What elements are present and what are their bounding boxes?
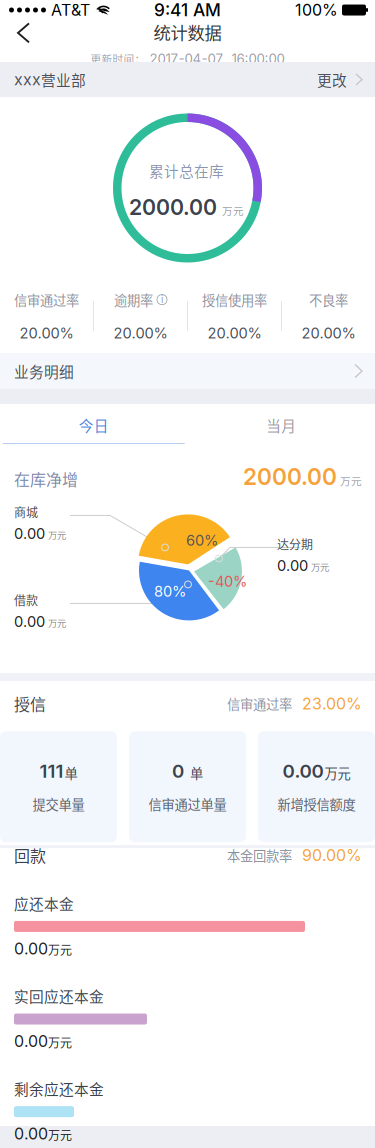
staticText: 80%	[154, 582, 186, 600]
button[interactable]: xxx	[0, 62, 375, 97]
staticText: 90.00%	[302, 845, 362, 865]
staticText: 万元	[48, 528, 66, 541]
staticText: 达分期	[277, 535, 313, 553]
staticText: 万元	[340, 473, 362, 488]
staticText: 不良率	[309, 290, 348, 309]
staticText: 0	[172, 760, 189, 782]
staticText: 应还本金	[14, 893, 74, 914]
staticText: 万元	[48, 941, 72, 958]
staticText: 授信使用率	[202, 290, 267, 309]
button[interactable]: Back	[0, 15, 43, 51]
staticText: 万元	[324, 763, 350, 782]
staticText: 0.00	[277, 557, 308, 574]
staticText: -40%	[208, 572, 247, 590]
staticText: 新增授信额度	[277, 794, 355, 814]
staticText: 信审通过率	[14, 290, 79, 309]
staticText: 更新时间：	[90, 51, 145, 66]
staticText: 商城	[14, 503, 38, 521]
staticText: 营业部	[41, 69, 86, 90]
staticText: 信审通过率	[227, 694, 292, 713]
staticText: 业务明细	[14, 360, 74, 382]
staticText: 111	[39, 760, 63, 782]
staticText: 剩余应还本金	[14, 1078, 104, 1099]
staticText: i	[161, 294, 163, 305]
staticText: 信审通过单量	[148, 794, 226, 814]
staticText: 9:41 AM	[154, 0, 221, 20]
staticText: 授信	[14, 692, 46, 715]
button[interactable]: 今日	[0, 404, 187, 444]
button[interactable]: 当月	[187, 404, 375, 444]
button[interactable]: 业务明细	[0, 353, 375, 389]
staticText: 当月	[266, 414, 296, 436]
staticText: 2017-04-07 16:00:00	[145, 50, 284, 67]
staticText: 本金回款率	[227, 845, 292, 865]
staticText: 0.00	[14, 525, 45, 542]
staticText: xxx	[14, 70, 41, 89]
staticText: 万元	[311, 560, 329, 573]
staticText: 0.00	[14, 1124, 48, 1143]
staticText: 实回应还本金	[14, 985, 104, 1006]
staticText: 23.00%	[302, 694, 362, 713]
staticText: 逾期率	[114, 290, 153, 309]
staticText: 统计数据	[153, 19, 221, 44]
staticText: 单	[190, 763, 203, 782]
staticText: 100%	[295, 0, 338, 20]
staticText: 20.00%	[113, 324, 167, 342]
staticText: 0.00	[14, 613, 45, 630]
staticText: 在库净增	[14, 467, 78, 490]
staticText: 万元	[222, 203, 244, 218]
staticText: 借款	[14, 591, 38, 609]
staticText: 0.00	[282, 760, 323, 782]
staticText: 单	[64, 763, 77, 782]
staticText: 万元	[48, 1033, 72, 1051]
staticText: 回款	[14, 843, 46, 867]
staticText: 20.00%	[207, 324, 261, 342]
staticText: 0.00	[14, 1031, 48, 1051]
staticText: 2000.00	[243, 463, 337, 490]
staticText: 万元	[48, 616, 66, 629]
staticText: 0.00	[14, 939, 48, 958]
staticText: 更改	[317, 69, 347, 90]
staticText: 提交单量	[32, 794, 84, 814]
staticText: 60%	[186, 531, 218, 549]
staticText: 累计总在库	[149, 160, 224, 181]
staticText: 万元	[48, 1126, 72, 1143]
staticText: 20.00%	[19, 324, 73, 342]
staticText: AT&T	[51, 0, 90, 20]
staticText: 2000.00	[129, 194, 217, 220]
staticText: 20.00%	[301, 324, 355, 342]
staticText: 今日	[79, 414, 109, 436]
